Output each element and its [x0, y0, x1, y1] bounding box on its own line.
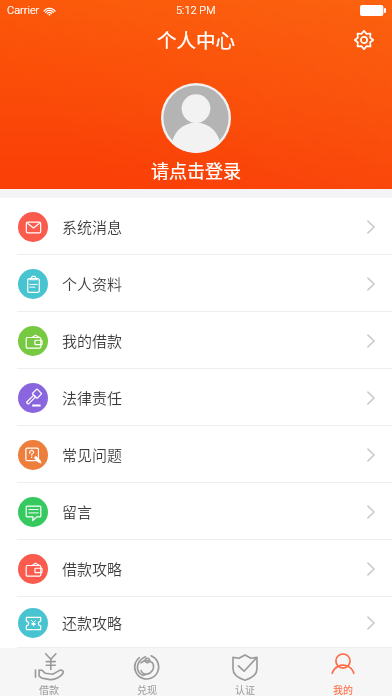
- button[interactable]: 系统消息: [0, 198, 392, 255]
- staticText: 借款: [39, 682, 59, 696]
- staticText: 系统消息: [62, 216, 123, 238]
- button[interactable]: 我的: [294, 648, 392, 696]
- staticText: 兑现: [137, 682, 157, 696]
- button[interactable]: Settings: [348, 24, 380, 56]
- staticText: 认证: [235, 682, 255, 696]
- staticText: 个人中心: [157, 25, 236, 53]
- staticText: 留言: [62, 501, 93, 523]
- staticText: 5:12 PM: [176, 4, 216, 17]
- button[interactable]: 请点击登录: [151, 157, 241, 183]
- button[interactable]: 借款攻略: [0, 540, 392, 597]
- staticText: 常见问题: [62, 444, 123, 466]
- button[interactable]: 还款攻略: [0, 597, 392, 648]
- button[interactable]: 兑现: [98, 648, 196, 696]
- staticText: 借款攻略: [62, 558, 123, 580]
- button[interactable]: 常见问题: [0, 426, 392, 483]
- button[interactable]: 留言: [0, 483, 392, 540]
- button[interactable]: 认证: [196, 648, 294, 696]
- button[interactable]: Avatar: [161, 83, 231, 153]
- button[interactable]: 个人资料: [0, 255, 392, 312]
- staticText: 法律责任: [62, 387, 123, 409]
- staticText: Carrier: [7, 4, 40, 17]
- staticText: 我的: [333, 682, 353, 696]
- button[interactable]: 借款: [0, 648, 98, 696]
- button[interactable]: 我的借款: [0, 312, 392, 369]
- button[interactable]: 法律责任: [0, 369, 392, 426]
- staticText: 我的借款: [62, 330, 123, 352]
- staticText: 还款攻略: [62, 612, 123, 634]
- staticText: 个人资料: [62, 273, 123, 295]
